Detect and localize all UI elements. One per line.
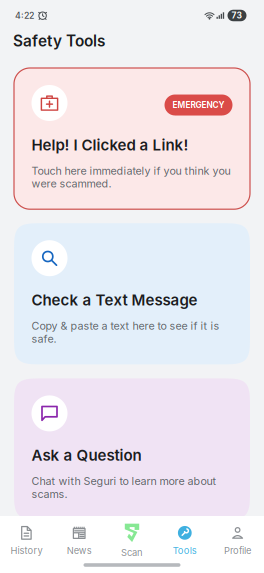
staticText: Profile (224, 545, 251, 556)
staticText: Check a Text Message (31, 291, 197, 309)
staticText: Ask a Question (31, 446, 141, 464)
button[interactable]: EMERGENCY (14, 68, 250, 209)
button[interactable]: Check a Text Message (14, 223, 250, 364)
staticText: EMERGENCY (172, 100, 224, 110)
button[interactable]: Scan (106, 524, 158, 558)
staticText: Scan (121, 547, 143, 558)
staticText: Copy & paste a text here to see if it is… (31, 319, 219, 345)
staticText: Safety Tools (13, 32, 105, 50)
staticText: News (67, 545, 92, 556)
button[interactable]: Tools (158, 526, 211, 556)
staticText: Chat with Seguri to learn more about sca… (31, 475, 216, 501)
button[interactable]: Ask a Question (14, 378, 250, 520)
staticText: 73 (231, 10, 242, 21)
staticText: Touch here immediately if you think you … (31, 164, 230, 190)
staticText: History (10, 545, 42, 556)
button[interactable]: History (0, 526, 53, 556)
staticText: Tools (173, 545, 197, 556)
staticText: 4:22 (15, 10, 34, 21)
staticText: Help! I Clicked a Link! (31, 136, 188, 154)
button[interactable]: Profile (211, 526, 264, 556)
button[interactable]: News (53, 526, 106, 556)
